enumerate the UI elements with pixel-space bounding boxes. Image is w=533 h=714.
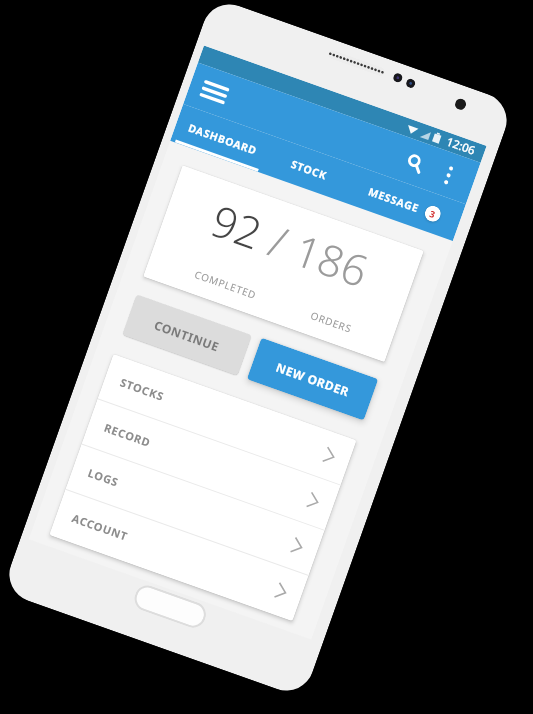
staticText: CONTINUE — [152, 317, 222, 354]
button[interactable]: STOCKS — [98, 354, 357, 485]
button[interactable]: Open navigation menu — [195, 72, 233, 111]
staticText: ORDERS — [309, 308, 354, 336]
button[interactable]: STOCK — [262, 137, 357, 202]
staticText: STOCKS — [118, 374, 167, 404]
button[interactable]: LOGS — [66, 444, 324, 575]
button[interactable]: ACCOUNT — [50, 490, 308, 620]
staticText: 186 — [287, 220, 376, 300]
staticText: STOCK — [289, 157, 330, 183]
button[interactable]: NEW ORDER — [247, 338, 378, 421]
staticText: ACCOUNT — [70, 510, 131, 544]
staticText: 3 — [428, 207, 438, 220]
staticText: RECORD — [102, 420, 153, 450]
staticText: 12:06 — [444, 134, 478, 159]
staticText: / — [251, 207, 307, 275]
staticText: LOGS — [86, 465, 121, 490]
button[interactable]: RECORD — [82, 399, 341, 530]
staticText: DASHBOARD — [186, 120, 259, 158]
button[interactable]: DASHBOARD — [170, 104, 275, 173]
button[interactable]: More options — [431, 157, 467, 193]
button[interactable]: Search — [394, 142, 435, 183]
staticText: MESSAGE — [366, 184, 421, 215]
staticText: NEW ORDER — [274, 359, 352, 400]
button[interactable]: CONTINUE — [122, 294, 252, 376]
button[interactable]: MESSAGE — [343, 165, 466, 241]
staticText: COMPLETED — [193, 267, 259, 302]
staticText: 92 — [204, 190, 271, 263]
